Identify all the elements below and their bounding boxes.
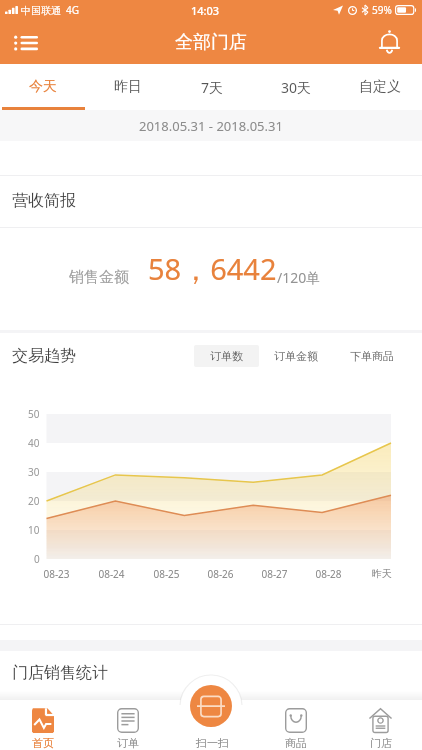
staticText: 销售金额 xyxy=(69,268,129,287)
button[interactable]: Notifications xyxy=(369,22,409,62)
button[interactable]: 下单商品 xyxy=(333,345,394,367)
staticText: 30天 xyxy=(281,78,312,97)
staticText: 2018.05.31 - 2018.05.31 xyxy=(139,117,283,135)
staticText: /120单 xyxy=(277,268,321,287)
button[interactable]: 订单数 xyxy=(194,345,259,367)
button[interactable]: 扫一扫 xyxy=(170,672,254,750)
staticText: 今天 xyxy=(29,78,57,96)
button[interactable]: 自定义 xyxy=(338,64,422,110)
button[interactable]: 订单 xyxy=(85,672,170,750)
staticText: 58，6442 xyxy=(148,249,277,289)
button[interactable]: 今天 xyxy=(0,64,85,110)
staticText: 门店销售统计 xyxy=(12,663,108,683)
staticText: 交易趋势 xyxy=(12,346,76,366)
staticText: 营收简报 xyxy=(12,191,76,211)
staticText: 昨日 xyxy=(114,78,142,96)
staticText: 订单数 xyxy=(210,349,243,363)
staticText: 59% xyxy=(372,3,392,17)
staticText: 10 xyxy=(28,523,40,537)
staticText: 全部门店 xyxy=(175,31,247,54)
button[interactable]: 昨日 xyxy=(85,64,170,110)
button[interactable]: 30天 xyxy=(254,64,338,110)
staticText: 30 xyxy=(28,465,40,479)
button[interactable]: 2018.05.31 - 2018.05.31 xyxy=(0,110,422,141)
staticText: 昨天 xyxy=(372,567,392,580)
staticText: 0 xyxy=(34,552,40,566)
staticText: 40 xyxy=(28,436,40,450)
staticText: 自定义 xyxy=(359,78,401,96)
button[interactable]: Scan xyxy=(190,685,232,727)
staticText: 7天 xyxy=(201,78,224,97)
staticText: 首页 xyxy=(32,736,54,750)
staticText: 08-24 xyxy=(98,567,125,581)
staticText: 50 xyxy=(28,407,40,421)
staticText: 08-25 xyxy=(153,567,180,581)
staticText: 订单 xyxy=(117,736,139,750)
staticText: 门店 xyxy=(370,736,392,750)
staticText: 订单金额 xyxy=(274,349,318,363)
button[interactable]: 7天 xyxy=(170,64,254,110)
button[interactable]: 订单金额 xyxy=(259,345,333,367)
button[interactable]: 首页 xyxy=(0,672,85,750)
staticText: 商品 xyxy=(285,736,307,750)
staticText: 4G xyxy=(66,3,79,17)
staticText: 08-27 xyxy=(261,567,288,581)
button[interactable]: 商品 xyxy=(254,672,338,750)
staticText: 扫一扫 xyxy=(196,736,229,750)
button[interactable]: 门店 xyxy=(338,672,422,750)
staticText: 08-28 xyxy=(315,567,342,581)
staticText: 14:03 xyxy=(191,3,220,18)
staticText: 下单商品 xyxy=(350,349,394,363)
staticText: 中国联通 xyxy=(21,4,61,17)
staticText: 08-23 xyxy=(43,567,70,581)
staticText: 08-26 xyxy=(207,567,234,581)
staticText: 20 xyxy=(28,494,40,508)
button[interactable]: Menu xyxy=(6,22,46,62)
